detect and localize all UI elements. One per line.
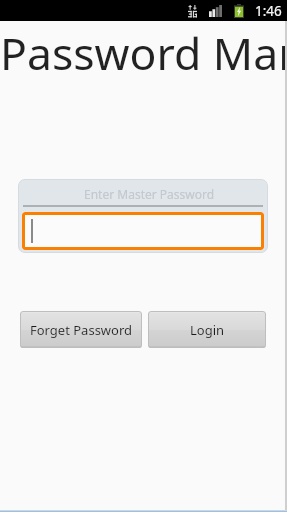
staticText: 1:46 [255,2,282,20]
button[interactable]: Login [148,311,266,348]
staticText: Password Manager [0,22,287,83]
button[interactable]: Forget Password [20,311,142,348]
button[interactable]: Master password input field [22,212,264,250]
staticText: Enter Master Password [84,186,215,202]
staticText: Forget Password [30,321,133,339]
staticText: Login [190,321,225,339]
